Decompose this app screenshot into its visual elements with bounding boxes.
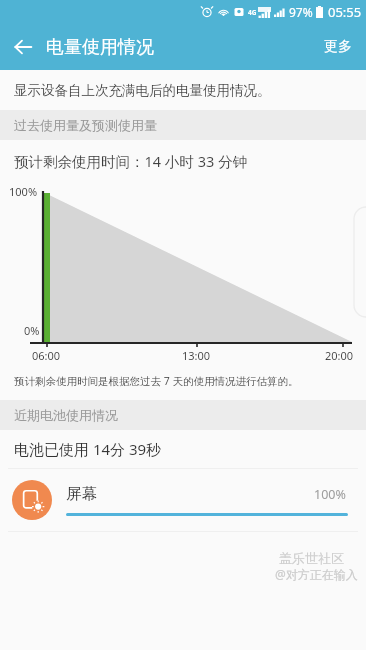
staticText: 20:00 <box>325 348 354 363</box>
staticText: 13:00 <box>182 348 211 363</box>
staticText: @对方正在输入 <box>275 566 358 582</box>
staticText: 显示设备自上次充满电后的电量使用情况。 <box>14 82 271 99</box>
staticText: 过去使用量及预测使用量 <box>14 117 157 133</box>
staticText: 屏幕 <box>66 484 97 504</box>
button[interactable]: Back <box>0 24 46 70</box>
staticText: 97% <box>289 4 313 20</box>
button[interactable]: 更多 <box>310 28 366 66</box>
staticText: 盖乐世社区 <box>279 550 344 566</box>
staticText: 05:55 <box>328 3 362 21</box>
staticText: 电池已使用 14分 39秒 <box>14 439 162 459</box>
staticText: 近期电池使用情况 <box>14 407 118 423</box>
staticText: 更多 <box>324 38 352 56</box>
staticText: 06:00 <box>32 348 61 363</box>
staticText: 电量使用情况 <box>46 36 154 59</box>
staticText: 4G <box>248 8 257 17</box>
button[interactable]: 屏幕 <box>0 469 366 531</box>
staticText: 预计剩余使用时间是根据您过去 7 天的使用情况进行估算的。 <box>14 374 299 388</box>
staticText: 0% <box>24 323 40 338</box>
staticText: 100% <box>9 184 38 199</box>
staticText: 100% <box>314 486 346 503</box>
staticText: 预计剩余使用时间：14 小时 33 分钟 <box>14 151 247 171</box>
